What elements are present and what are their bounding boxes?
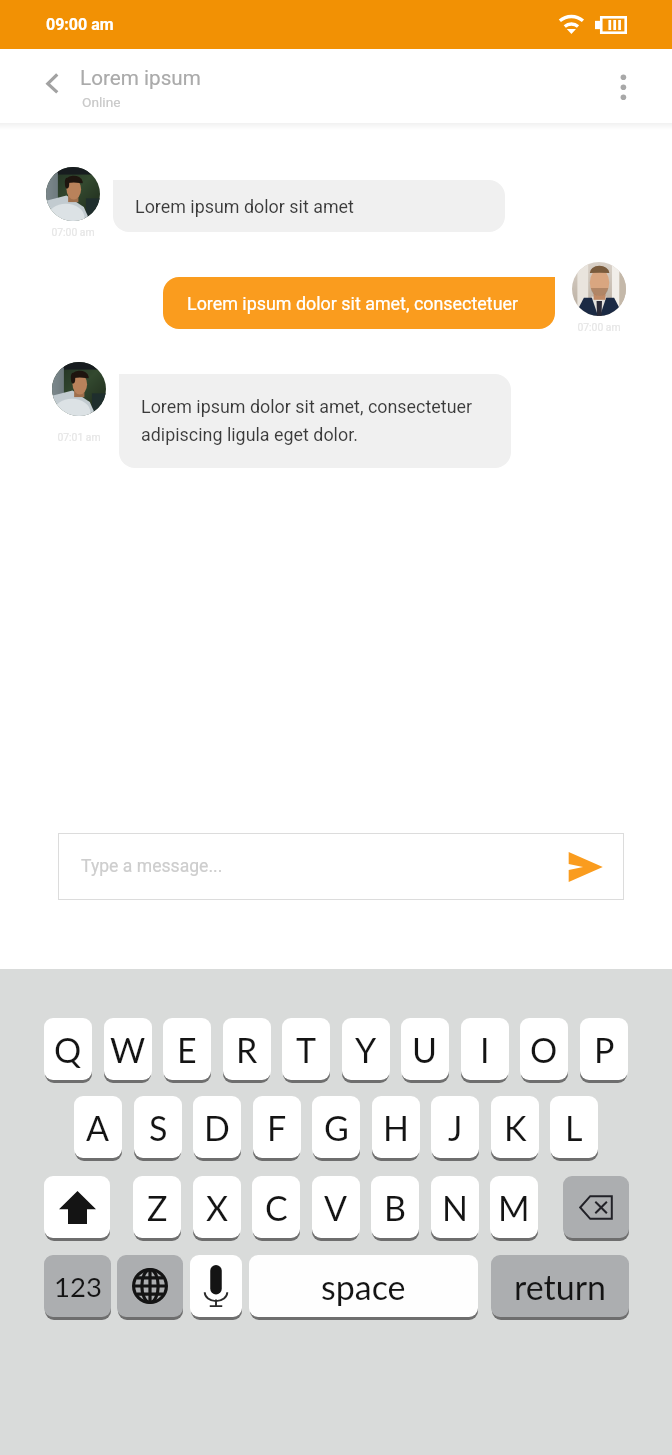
- button[interactable]: R: [223, 1018, 271, 1080]
- button[interactable]: A: [74, 1096, 122, 1158]
- staticText: I: [480, 1029, 490, 1070]
- staticText: 07:01 am: [52, 431, 106, 443]
- button[interactable]: J: [431, 1096, 479, 1158]
- button[interactable]: U: [401, 1018, 449, 1080]
- staticText: K: [504, 1107, 527, 1148]
- staticText: Lorem ipsum dolor sit amet, consectetuer…: [141, 396, 473, 446]
- staticText: Y: [355, 1029, 377, 1070]
- staticText: Lorem ipsum dolor sit amet, consectetuer: [187, 293, 519, 314]
- button[interactable]: E: [163, 1018, 211, 1080]
- button[interactable]: Lorem ipsum dolor sit amet, consectetuer: [163, 277, 555, 329]
- staticText: Type a message...: [81, 856, 223, 877]
- button[interactable]: Lorem ipsum dolor sit amet: [113, 180, 505, 232]
- staticText: C: [265, 1187, 288, 1228]
- staticText: H: [383, 1107, 409, 1148]
- staticText: U: [412, 1029, 438, 1070]
- staticText: S: [149, 1107, 168, 1148]
- button[interactable]: Lorem ipsum dolor sit amet, consectetuer…: [119, 374, 511, 468]
- staticText: V: [324, 1187, 348, 1228]
- button[interactable]: M: [490, 1176, 538, 1238]
- staticText: T: [296, 1029, 317, 1070]
- button[interactable]: Y: [342, 1018, 390, 1080]
- button[interactable]: D: [193, 1096, 241, 1158]
- button[interactable]: B: [371, 1176, 419, 1238]
- button[interactable]: Z: [133, 1176, 181, 1238]
- staticText: Lorem ipsum: [80, 66, 201, 90]
- staticText: W: [110, 1029, 146, 1070]
- staticText: J: [448, 1107, 463, 1148]
- staticText: 09:00 am: [46, 15, 114, 34]
- button[interactable]: 123: [44, 1255, 111, 1317]
- staticText: B: [384, 1187, 406, 1228]
- staticText: Q: [54, 1029, 82, 1070]
- button[interactable]: C: [252, 1176, 300, 1238]
- staticText: Lorem ipsum dolor sit amet: [135, 196, 354, 217]
- staticText: Z: [147, 1187, 168, 1228]
- button[interactable]: return: [491, 1255, 629, 1317]
- button[interactable]: O: [520, 1018, 568, 1080]
- staticText: return: [514, 1266, 607, 1307]
- button[interactable]: K: [491, 1096, 539, 1158]
- button[interactable]: W: [104, 1018, 152, 1080]
- staticText: E: [177, 1029, 197, 1070]
- button[interactable]: F: [253, 1096, 301, 1158]
- button[interactable]: Type a message...: [58, 833, 624, 900]
- button[interactable]: X: [193, 1176, 241, 1238]
- staticText: 07:00 am: [572, 321, 626, 333]
- button[interactable]: Back: [34, 62, 70, 110]
- button[interactable]: Q: [44, 1018, 92, 1080]
- button[interactable]: More options: [603, 58, 644, 106]
- button[interactable]: space: [249, 1255, 478, 1317]
- button[interactable]: T: [282, 1018, 330, 1080]
- staticText: R: [236, 1029, 258, 1070]
- staticText: P: [594, 1029, 615, 1070]
- staticText: M: [498, 1187, 530, 1228]
- staticText: X: [206, 1187, 229, 1228]
- button[interactable]: H: [372, 1096, 420, 1158]
- staticText: space: [321, 1266, 406, 1307]
- button[interactable]: S: [134, 1096, 182, 1158]
- button[interactable]: Backspace: [563, 1176, 629, 1238]
- staticText: Online: [82, 94, 121, 110]
- button[interactable]: V: [312, 1176, 360, 1238]
- staticText: F: [267, 1107, 287, 1148]
- staticText: N: [442, 1187, 468, 1228]
- button[interactable]: Shift: [44, 1176, 110, 1238]
- staticText: D: [204, 1107, 230, 1148]
- button[interactable]: P: [580, 1018, 628, 1080]
- staticText: L: [565, 1107, 583, 1148]
- staticText: A: [86, 1107, 110, 1148]
- staticText: O: [530, 1029, 558, 1070]
- button[interactable]: I: [461, 1018, 509, 1080]
- button[interactable]: G: [312, 1096, 360, 1158]
- staticText: G: [324, 1107, 349, 1148]
- button[interactable]: L: [550, 1096, 598, 1158]
- staticText: 07:00 am: [46, 226, 100, 238]
- staticText: 123: [54, 1270, 102, 1303]
- button[interactable]: Send: [561, 843, 609, 891]
- button[interactable]: Voice input: [190, 1255, 242, 1317]
- button[interactable]: N: [431, 1176, 479, 1238]
- button[interactable]: Switch keyboard: [117, 1255, 183, 1317]
